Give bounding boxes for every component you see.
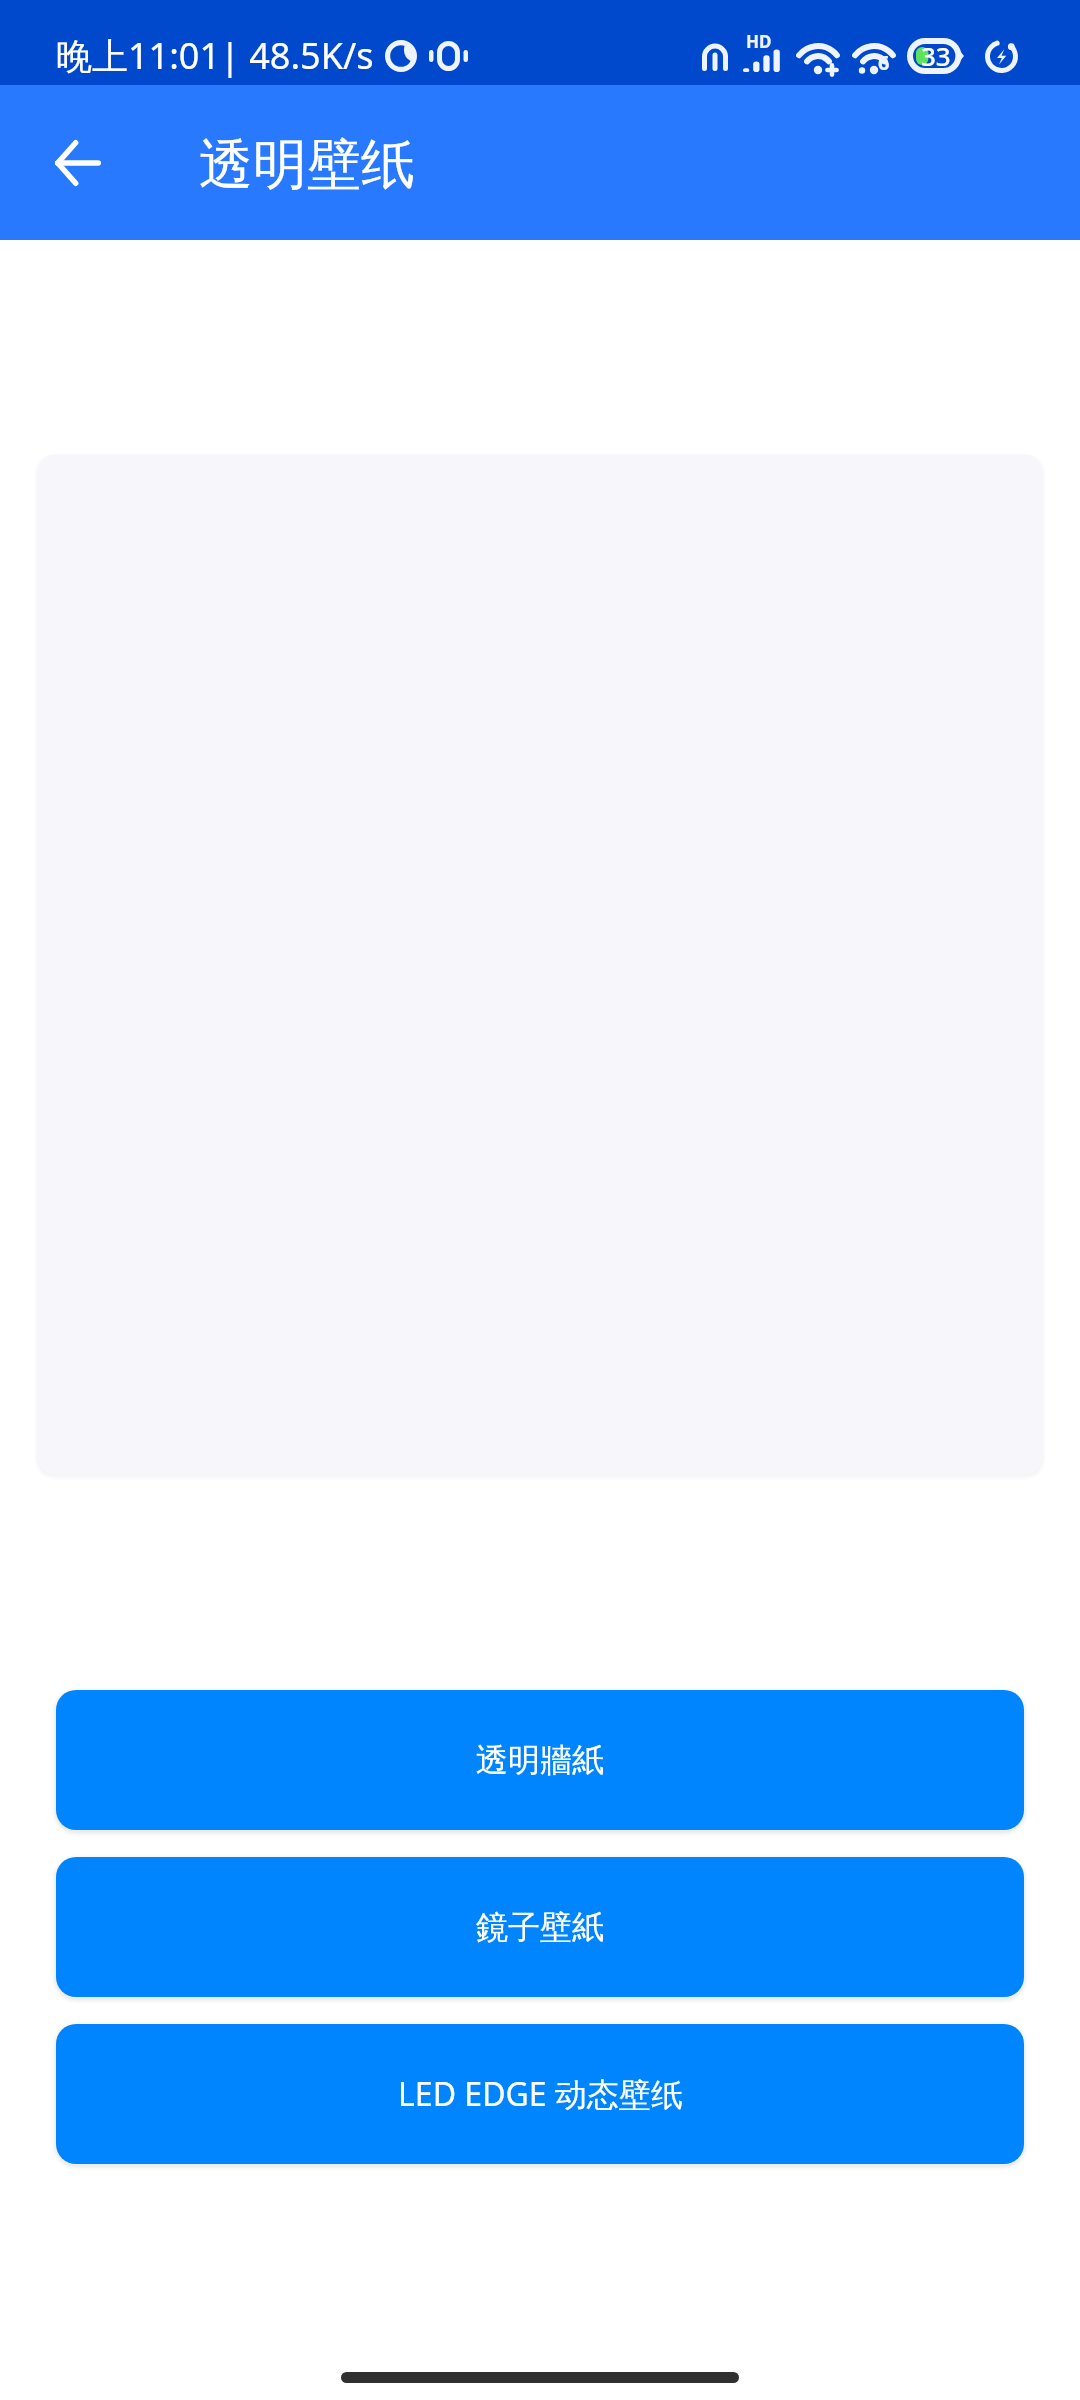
- staticText: 鏡子壁紙: [476, 1907, 604, 1947]
- button[interactable]: 透明牆紙: [48, 1682, 1032, 1838]
- staticText: LED EDGE 动态壁纸: [398, 2072, 683, 2116]
- button[interactable]: 鏡子壁紙: [48, 1849, 1032, 2005]
- button[interactable]: Back: [34, 119, 122, 207]
- staticText: 6: [878, 49, 890, 76]
- staticText: 透明牆紙: [476, 1740, 604, 1780]
- staticText: 晚上11:01| 48.5K/s: [56, 31, 374, 80]
- staticText: 33: [921, 38, 951, 73]
- button[interactable]: LED EDGE 动态壁纸: [48, 2016, 1032, 2172]
- staticText: 透明壁纸: [199, 131, 415, 199]
- staticText: HD: [746, 30, 772, 53]
